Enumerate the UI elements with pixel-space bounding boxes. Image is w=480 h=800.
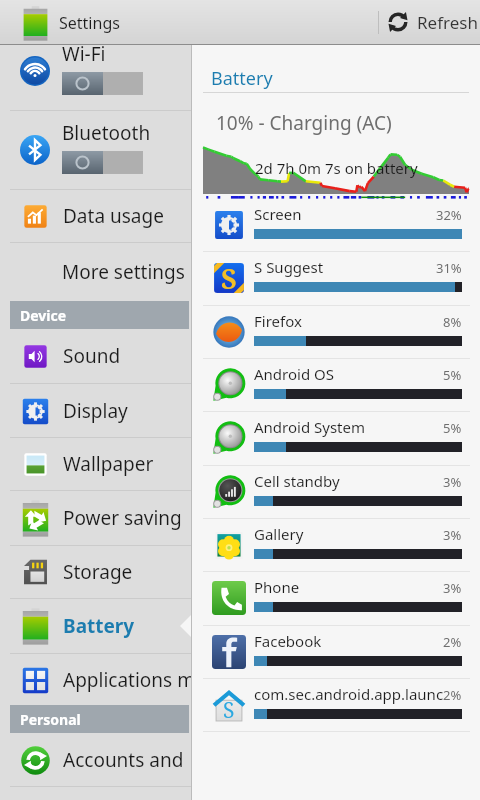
button[interactable]: Firefox xyxy=(192,306,480,358)
staticText: S xyxy=(221,260,237,294)
staticText: 2% xyxy=(443,686,462,704)
staticText: 10% - Charging (AC) xyxy=(216,110,392,136)
staticText: Data usage xyxy=(63,203,164,229)
button[interactable]: Facebook xyxy=(192,626,480,678)
staticText: 31% xyxy=(436,259,462,277)
staticText: S xyxy=(223,696,235,725)
button[interactable]: Bluetooth xyxy=(0,111,191,189)
button[interactable]: More settings xyxy=(0,243,191,301)
staticText: 8% xyxy=(443,313,462,331)
staticText: 3% xyxy=(443,473,462,491)
button[interactable]: Android System xyxy=(192,412,480,465)
staticText: Power saving xyxy=(63,505,182,531)
staticText: Bluetooth xyxy=(62,120,151,146)
button[interactable]: Power saving xyxy=(0,491,191,545)
staticText: Accounts and xyxy=(63,747,189,773)
button[interactable]: Gallery xyxy=(192,519,480,571)
button[interactable]: Refresh xyxy=(372,0,480,44)
staticText: Sound xyxy=(63,343,121,369)
button[interactable]: Wi-Fi xyxy=(0,32,191,110)
staticText: 5% xyxy=(443,366,462,384)
button[interactable]: S xyxy=(192,679,480,731)
staticText: Battery xyxy=(63,613,135,639)
staticText: 2% xyxy=(443,633,462,651)
staticText: 5% xyxy=(443,419,462,437)
staticText: Wallpaper xyxy=(63,451,154,477)
button[interactable]: Android OS xyxy=(192,359,480,411)
button[interactable]: Phone xyxy=(192,572,480,625)
staticText: Cell standby xyxy=(254,471,340,491)
staticText: Refresh xyxy=(417,11,478,34)
staticText: com.sec.android.app.launcher xyxy=(254,684,444,704)
button[interactable]: Data usage xyxy=(0,190,191,242)
button[interactable]: S xyxy=(192,252,480,305)
staticText: 2d 7h 0m 7s on battery xyxy=(255,158,418,178)
button[interactable]: Applications m xyxy=(0,654,191,705)
button[interactable]: Accounts and xyxy=(0,733,191,786)
staticText: Battery xyxy=(211,66,273,91)
staticText: 32% xyxy=(436,206,462,224)
button[interactable]: Sound xyxy=(0,329,191,383)
button[interactable]: Battery xyxy=(0,599,191,653)
button[interactable]: Display xyxy=(0,384,191,437)
staticText: Wi-Fi xyxy=(62,41,106,67)
staticText: Display xyxy=(63,398,128,424)
staticText: Android System xyxy=(254,417,366,437)
staticText: Personal xyxy=(20,710,81,729)
button[interactable]: Screen xyxy=(192,199,480,251)
button[interactable]: Cell standby xyxy=(192,466,480,518)
staticText: Screen xyxy=(254,204,302,224)
staticText: 3% xyxy=(443,579,462,597)
staticText: Firefox xyxy=(254,311,302,331)
staticText: More settings xyxy=(62,259,185,285)
staticText: Device xyxy=(20,306,67,325)
staticText: S Suggest xyxy=(254,257,324,277)
button[interactable]: Wallpaper xyxy=(0,438,191,490)
staticText: Phone xyxy=(254,577,300,597)
staticText: Applications m xyxy=(63,667,191,693)
staticText: Facebook xyxy=(254,631,322,651)
staticText: Storage xyxy=(63,559,133,585)
staticText: Gallery xyxy=(254,524,304,544)
staticText: Settings xyxy=(59,12,120,34)
staticText: 3% xyxy=(443,526,462,544)
staticText: Android OS xyxy=(254,364,334,384)
button[interactable]: Storage xyxy=(0,546,191,598)
